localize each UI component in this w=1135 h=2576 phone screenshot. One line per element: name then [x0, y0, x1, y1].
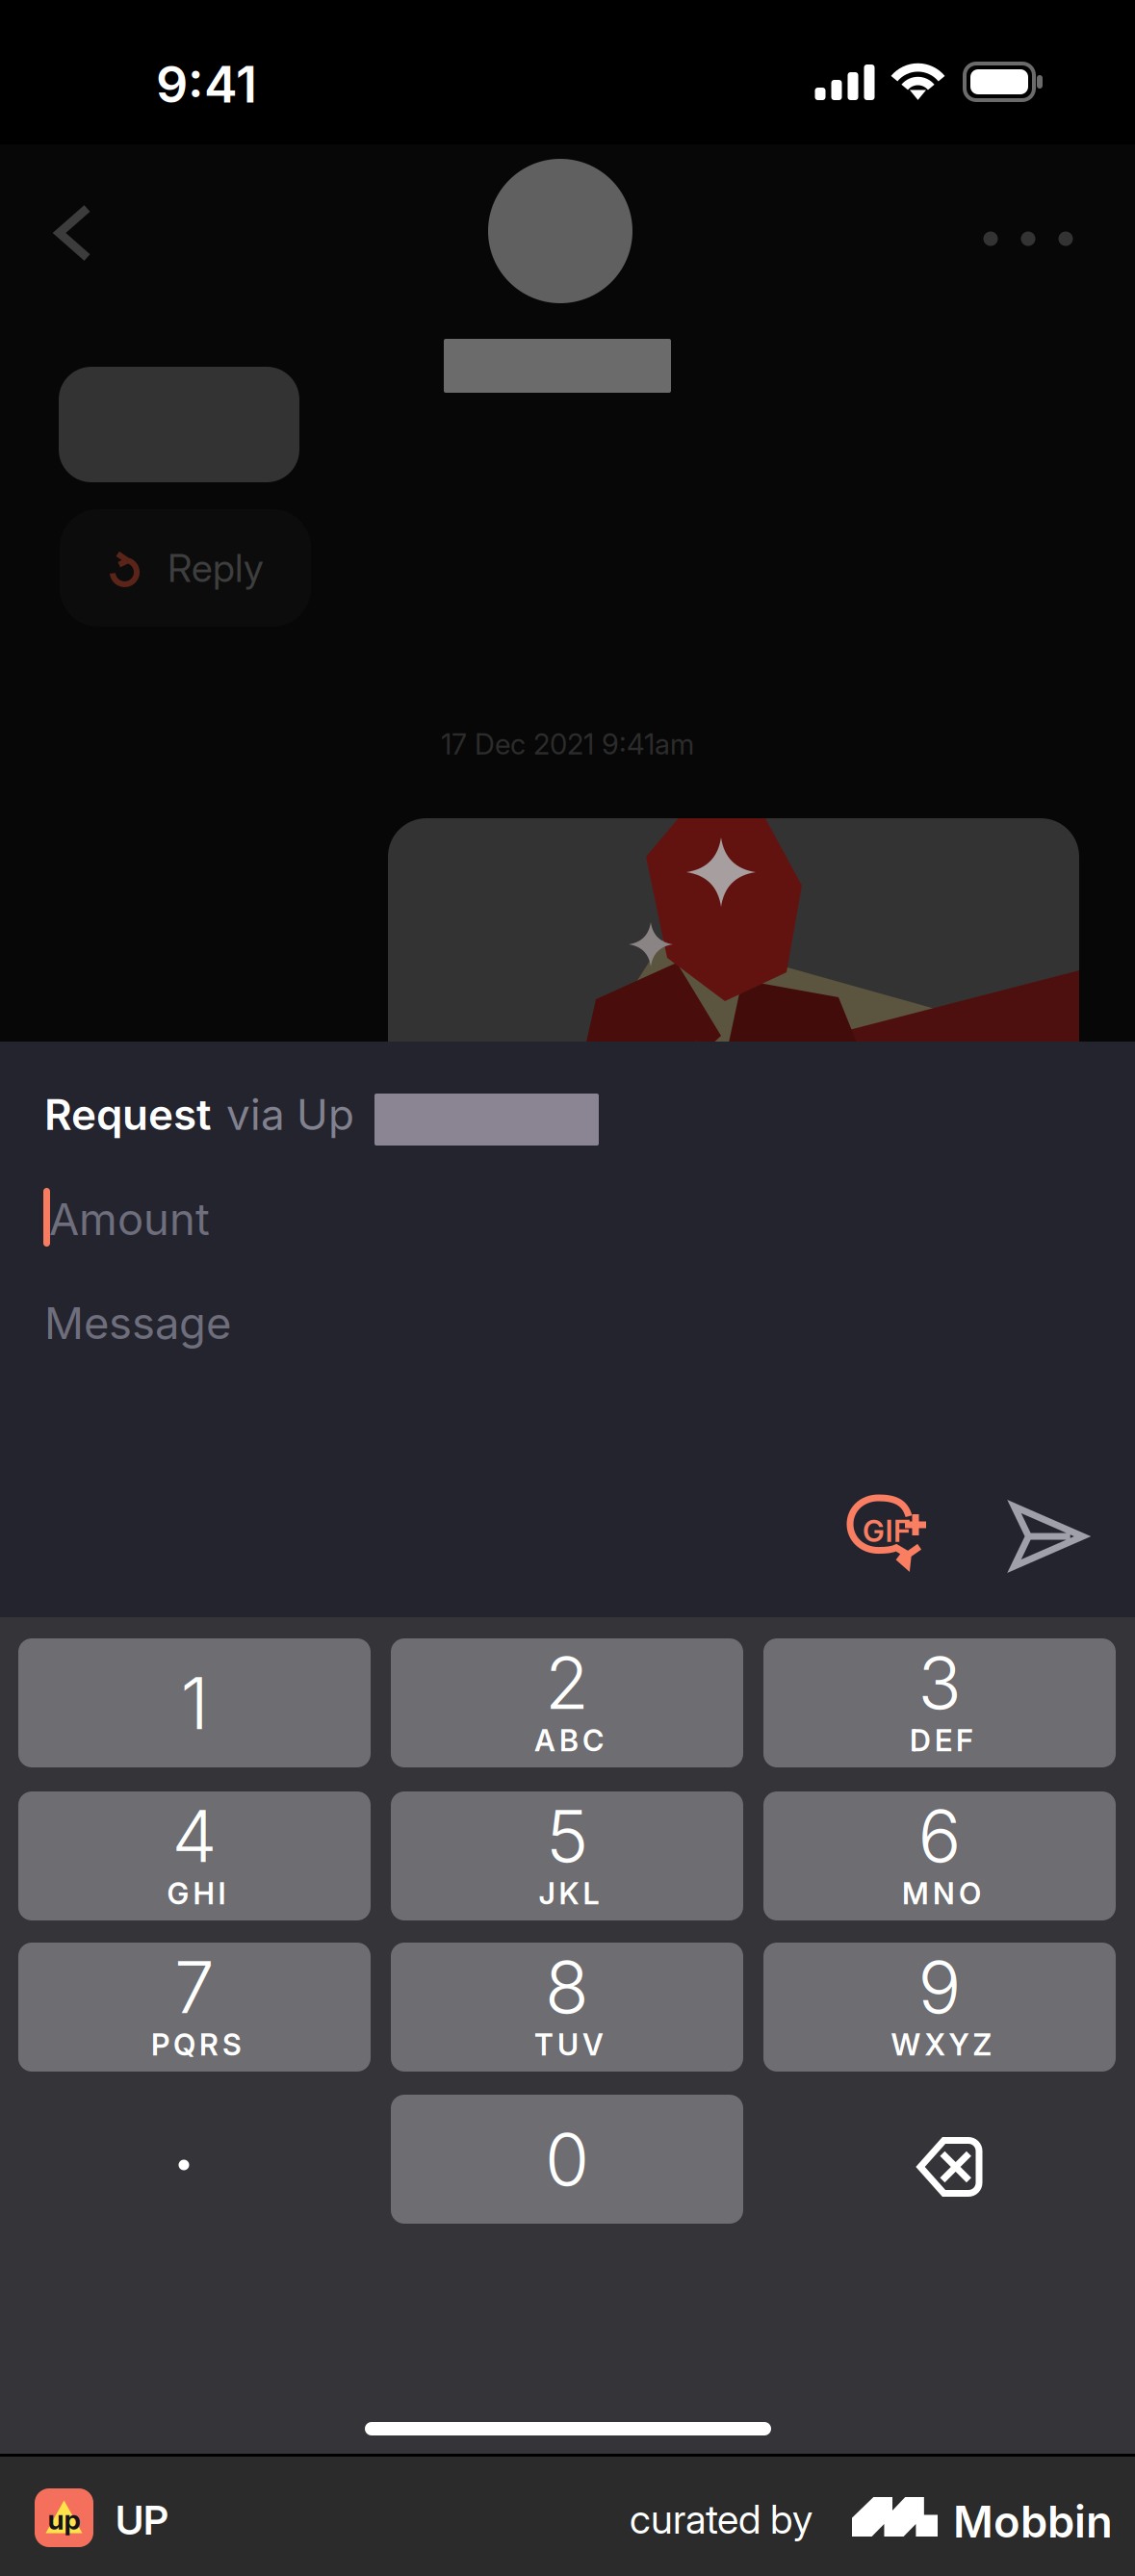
- staticText: Message: [44, 1297, 231, 1350]
- button[interactable]: 8: [391, 1943, 743, 2072]
- staticText: 5: [546, 1792, 588, 1879]
- button[interactable]: Decimal point: [18, 2095, 371, 2224]
- button[interactable]: 0: [391, 2095, 743, 2224]
- button[interactable]: 1: [18, 1638, 371, 1767]
- staticText: UP: [116, 2496, 168, 2544]
- staticText: 2: [545, 1639, 589, 1726]
- staticText: WXYZ: [891, 2027, 992, 2062]
- staticText: 3: [918, 1639, 961, 1726]
- staticText: 1: [181, 1659, 208, 1746]
- staticText: Reply: [168, 545, 264, 591]
- staticText: 9:41: [156, 54, 257, 114]
- button[interactable]: Reply: [60, 509, 311, 627]
- staticText: PQRS: [151, 2027, 242, 2062]
- button[interactable]: 2: [391, 1638, 743, 1767]
- staticText: via Up: [226, 1089, 354, 1140]
- staticText: GHI: [167, 1876, 226, 1911]
- button[interactable]: Delete: [763, 2095, 1116, 2224]
- button[interactable]: More options: [956, 186, 1100, 292]
- staticText: up: [48, 2503, 80, 2536]
- staticText: Amount: [49, 1193, 210, 1246]
- staticText: 6: [918, 1792, 961, 1879]
- staticText: DEF: [910, 1723, 973, 1758]
- button[interactable]: 7: [18, 1943, 371, 2072]
- staticText: ABC: [534, 1723, 604, 1758]
- staticText: 17 Dec 2021 9:41am: [441, 727, 694, 761]
- staticText: MNO: [902, 1876, 981, 1911]
- staticText: curated by: [630, 2495, 813, 2543]
- staticText: TUV: [534, 2027, 604, 2062]
- staticText: 8: [545, 1943, 589, 2030]
- button[interactable]: 5: [391, 1791, 743, 1920]
- staticText: 0: [545, 2116, 589, 2203]
- staticText: 4: [172, 1792, 217, 1879]
- staticText: Mobbin: [953, 2495, 1113, 2548]
- button[interactable]: Add GIF: [846, 1494, 952, 1590]
- button[interactable]: Send: [995, 1488, 1101, 1584]
- button[interactable]: 9: [763, 1943, 1116, 2072]
- staticText: Request: [44, 1089, 212, 1140]
- button[interactable]: 4: [18, 1791, 371, 1920]
- staticText: 7: [174, 1943, 215, 2030]
- button[interactable]: Back: [20, 180, 126, 286]
- staticText: 9: [918, 1943, 961, 2030]
- button[interactable]: 6: [763, 1791, 1116, 1920]
- button[interactable]: 3: [763, 1638, 1116, 1767]
- staticText: GIF: [863, 1513, 911, 1549]
- staticText: JKL: [539, 1876, 599, 1911]
